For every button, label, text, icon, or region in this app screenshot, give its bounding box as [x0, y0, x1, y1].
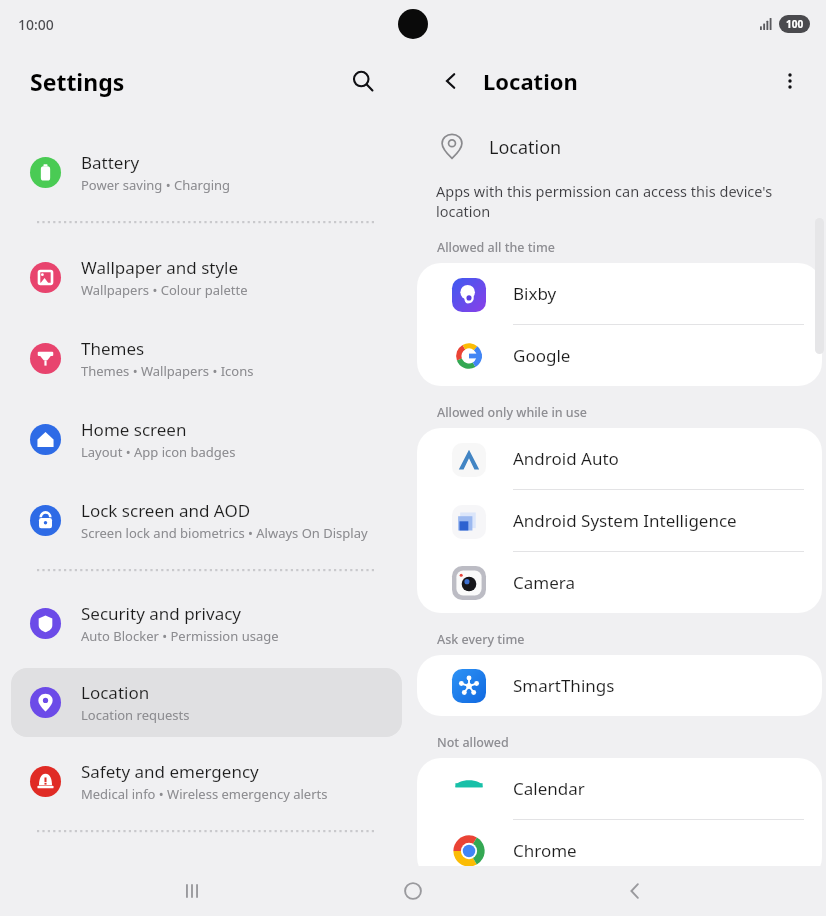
- button[interactable]: Location: [11, 668, 402, 737]
- staticText: Layout • App icon badges: [81, 443, 236, 461]
- button[interactable]: Android Auto: [417, 428, 822, 490]
- staticText: Ask every time: [437, 631, 525, 648]
- button[interactable]: SmartThings: [417, 655, 822, 716]
- staticText: Themes: [81, 337, 145, 360]
- staticText: Screen lock and biometrics • Always On D…: [81, 524, 368, 542]
- button[interactable]: Battery: [11, 138, 402, 207]
- staticText: Safety and emergency: [81, 760, 259, 783]
- button[interactable]: Camera: [417, 552, 822, 613]
- button[interactable]: Wallpaper and style: [11, 243, 402, 312]
- button[interactable]: Bixby: [417, 263, 822, 325]
- button[interactable]: Security and privacy: [11, 589, 402, 658]
- button[interactable]: Themes: [11, 324, 402, 393]
- staticText: Not allowed: [437, 734, 509, 751]
- staticText: Lock screen and AOD: [81, 499, 251, 522]
- staticText: 10:00: [18, 15, 54, 34]
- staticText: Power saving • Charging: [81, 176, 231, 194]
- button[interactable]: Chrome: [417, 820, 822, 881]
- button[interactable]: Safety and emergency: [11, 747, 402, 816]
- staticText: Allowed only while in use: [437, 404, 587, 421]
- staticText: Camera: [513, 571, 575, 594]
- staticText: Android Auto: [513, 447, 619, 470]
- button[interactable]: Recents: [162, 866, 222, 916]
- staticText: Location requests: [81, 706, 190, 724]
- staticText: Chrome: [513, 839, 577, 862]
- staticText: Wallpaper and style: [81, 256, 239, 279]
- staticText: Auto Blocker • Permission usage: [81, 627, 279, 645]
- staticText: Home screen: [81, 418, 187, 441]
- staticText: Bixby: [513, 282, 557, 305]
- staticText: Security and privacy: [81, 602, 242, 625]
- staticText: Android System Intelligence: [513, 509, 737, 532]
- button[interactable]: Back: [431, 61, 471, 101]
- staticText: Calendar: [513, 777, 585, 800]
- button[interactable]: Android System Intelligence: [417, 490, 822, 552]
- button[interactable]: Google: [417, 325, 822, 386]
- staticText: Allowed all the time: [437, 239, 555, 256]
- button[interactable]: Lock screen and AOD: [11, 486, 402, 555]
- button[interactable]: Search: [341, 59, 385, 103]
- button[interactable]: More options: [770, 61, 810, 101]
- button[interactable]: Home: [383, 866, 443, 916]
- staticText: 100: [786, 17, 804, 31]
- staticText: Themes • Wallpapers • Icons: [81, 362, 254, 380]
- staticText: Settings: [30, 66, 125, 97]
- staticText: Medical info • Wireless emergency alerts: [81, 785, 328, 803]
- staticText: Wallpapers • Colour palette: [81, 281, 248, 299]
- button[interactable]: Back: [605, 866, 665, 916]
- staticText: Location: [483, 66, 578, 96]
- button[interactable]: Home screen: [11, 405, 402, 474]
- staticText: Battery: [81, 151, 140, 174]
- staticText: Location: [489, 135, 562, 160]
- staticText: Location: [81, 681, 150, 704]
- staticText: Google: [513, 344, 571, 367]
- button[interactable]: Calendar: [417, 758, 822, 820]
- staticText: Apps with this permission can access thi…: [436, 181, 800, 222]
- staticText: SmartThings: [513, 674, 615, 697]
